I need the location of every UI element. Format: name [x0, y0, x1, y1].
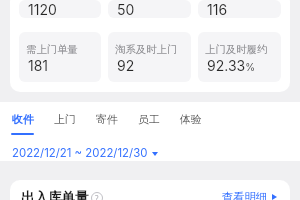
button[interactable]: 收件	[11, 102, 34, 135]
staticText: 50	[117, 1, 135, 18]
button[interactable]: 50	[108, 0, 191, 18]
staticText: 体验	[180, 113, 202, 127]
button[interactable]: 2022/12/21 ~ 2022/12/30	[12, 146, 300, 161]
staticText: ?	[95, 193, 99, 200]
staticText: 上门	[54, 113, 76, 127]
button[interactable]: 寄件	[96, 102, 118, 135]
other: Help	[91, 192, 103, 200]
button[interactable]: 需上门单量	[19, 32, 101, 82]
staticText: 92	[117, 57, 135, 74]
button[interactable]: 上门及时履约	[198, 32, 281, 82]
staticText: 淘系及时上门	[115, 43, 178, 56]
staticText: 需上门单量	[26, 43, 78, 56]
staticText: 2022/12/21 ~ 2022/12/30	[12, 146, 148, 160]
staticText: 出入库单量	[21, 189, 89, 200]
staticText: 收件	[12, 113, 34, 127]
staticText: 员工	[138, 113, 160, 127]
button[interactable]: 体验	[180, 102, 202, 135]
staticText: 寄件	[96, 113, 118, 127]
staticText: 1120	[28, 1, 57, 18]
button[interactable]: 上门	[54, 102, 76, 135]
staticText: 上门及时履约	[205, 43, 268, 56]
staticText: 92.33%	[207, 57, 255, 74]
button[interactable]: 1120	[19, 0, 101, 18]
staticText: 181	[28, 57, 49, 74]
staticText: 查看明细	[222, 190, 268, 200]
button[interactable]: 116	[198, 0, 281, 18]
staticText: 116	[207, 1, 228, 18]
button[interactable]: 查看明细	[222, 190, 277, 200]
button[interactable]: 员工	[138, 102, 160, 135]
button[interactable]: 淘系及时上门	[108, 32, 191, 82]
